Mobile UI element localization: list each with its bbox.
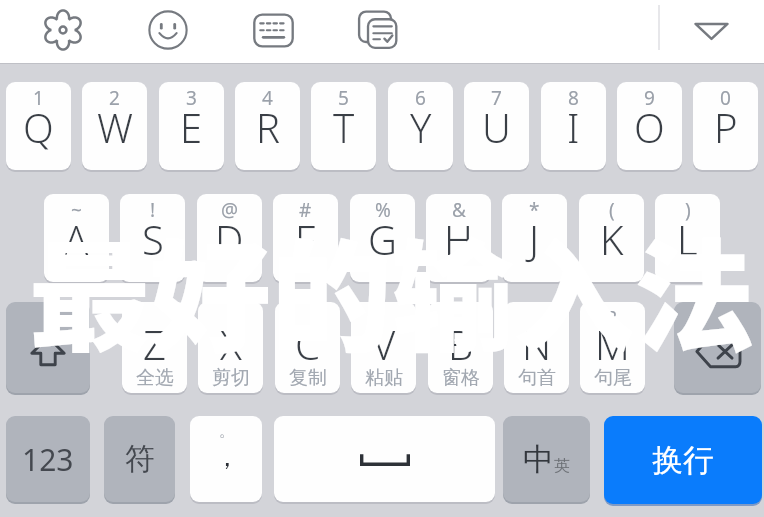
button[interactable]: Space bbox=[274, 416, 495, 502]
button[interactable]: Shift bbox=[6, 302, 90, 393]
staticText: 句首 bbox=[518, 366, 556, 390]
button[interactable]: 0 bbox=[693, 82, 758, 170]
button[interactable]: Z bbox=[122, 302, 187, 393]
staticText: 9 bbox=[644, 85, 655, 111]
staticText: 8 bbox=[568, 85, 579, 111]
staticText: 英 bbox=[554, 456, 570, 476]
staticText: 粘贴 bbox=[365, 366, 403, 390]
staticText: 2 bbox=[109, 85, 120, 111]
staticText: V bbox=[372, 317, 396, 371]
staticText: T bbox=[333, 100, 355, 154]
staticText: 4 bbox=[262, 85, 273, 111]
staticText: X bbox=[220, 317, 242, 371]
button[interactable]: 符 bbox=[104, 416, 175, 502]
button[interactable]: 5 bbox=[311, 82, 376, 170]
button[interactable]: Clipboard bbox=[355, 7, 402, 54]
button[interactable]: 6 bbox=[388, 82, 453, 170]
staticText: ~ bbox=[71, 197, 82, 223]
button[interactable]: V bbox=[351, 302, 416, 393]
staticText: % bbox=[375, 197, 391, 223]
staticText: H bbox=[444, 212, 473, 266]
button[interactable]: Backspace bbox=[674, 302, 761, 393]
staticText: Y bbox=[410, 100, 432, 154]
staticText: 换行 bbox=[652, 441, 714, 480]
staticText: C bbox=[295, 317, 320, 371]
staticText: B bbox=[448, 317, 474, 371]
button[interactable]: C bbox=[275, 302, 340, 393]
staticText: 窗格 bbox=[442, 366, 480, 390]
button[interactable]: Keyboard layout bbox=[250, 7, 297, 54]
button[interactable]: X bbox=[198, 302, 263, 393]
button[interactable]: 。 bbox=[190, 416, 262, 502]
staticText: 7 bbox=[491, 85, 502, 111]
staticText: ? bbox=[608, 305, 617, 331]
staticText: 6 bbox=[415, 85, 426, 111]
staticText: 。 bbox=[219, 422, 234, 441]
staticText: & bbox=[452, 197, 466, 223]
button[interactable]: % bbox=[350, 194, 415, 282]
staticText: R bbox=[256, 100, 280, 154]
staticText: G bbox=[368, 212, 397, 266]
button[interactable]: B bbox=[428, 302, 493, 393]
staticText: W bbox=[97, 100, 133, 154]
staticText: K bbox=[600, 212, 624, 266]
staticText: @ bbox=[221, 197, 239, 223]
staticText: 1 bbox=[33, 85, 44, 111]
button[interactable]: 9 bbox=[617, 82, 682, 170]
staticText: 剪切 bbox=[212, 366, 250, 390]
staticText: E bbox=[180, 100, 203, 154]
button[interactable]: 8 bbox=[541, 82, 606, 170]
staticText: 0 bbox=[720, 85, 731, 111]
button[interactable]: 4 bbox=[235, 82, 300, 170]
button[interactable]: & bbox=[426, 194, 491, 282]
staticText: L bbox=[677, 212, 698, 266]
button[interactable]: ~ bbox=[44, 194, 109, 282]
staticText: 符 bbox=[125, 440, 155, 478]
staticText: * bbox=[529, 197, 540, 223]
button[interactable]: Hide keyboard bbox=[688, 7, 735, 54]
staticText: U bbox=[482, 100, 511, 154]
staticText: ! bbox=[150, 197, 156, 223]
staticText: Z bbox=[143, 317, 166, 371]
staticText: S bbox=[142, 212, 164, 266]
staticText: 句尾 bbox=[594, 366, 632, 390]
button[interactable]: ! bbox=[120, 194, 185, 282]
button[interactable]: Emoji bbox=[145, 7, 191, 53]
button[interactable]: ( bbox=[579, 194, 644, 282]
button[interactable]: @ bbox=[197, 194, 262, 282]
staticText: ( bbox=[609, 197, 615, 223]
staticText: J bbox=[529, 212, 540, 266]
button[interactable]: 2 bbox=[82, 82, 147, 170]
staticText: ) bbox=[685, 197, 691, 223]
staticText: M bbox=[595, 317, 630, 371]
button[interactable]: ? bbox=[580, 302, 645, 393]
button[interactable]: 1 bbox=[6, 82, 71, 170]
button[interactable]: N bbox=[504, 302, 569, 393]
staticText: A bbox=[64, 212, 89, 266]
button[interactable]: 中 bbox=[503, 416, 590, 502]
button[interactable]: Settings bbox=[40, 7, 86, 53]
staticText: 复制 bbox=[289, 366, 327, 390]
staticText: 5 bbox=[338, 85, 349, 111]
staticText: N bbox=[522, 317, 552, 371]
staticText: 3 bbox=[186, 85, 197, 111]
staticText: O bbox=[634, 100, 665, 154]
staticText: # bbox=[299, 197, 312, 223]
staticText: P bbox=[714, 100, 738, 154]
staticText: F bbox=[295, 212, 316, 266]
button[interactable]: # bbox=[273, 194, 338, 282]
staticText: 最好的输入法 bbox=[29, 201, 756, 376]
staticText: Q bbox=[23, 100, 54, 154]
staticText: I bbox=[567, 100, 580, 154]
staticText: D bbox=[215, 212, 244, 266]
button[interactable]: 123 bbox=[6, 416, 90, 502]
button[interactable]: * bbox=[502, 194, 567, 282]
button[interactable]: ) bbox=[655, 194, 720, 282]
button[interactable]: 7 bbox=[464, 82, 529, 170]
staticText: 中 bbox=[523, 440, 554, 479]
staticText: 123 bbox=[22, 439, 74, 480]
button[interactable]: 换行 bbox=[604, 416, 762, 504]
staticText: 全选 bbox=[136, 366, 174, 390]
staticText: ， bbox=[214, 441, 240, 474]
button[interactable]: 3 bbox=[159, 82, 224, 170]
